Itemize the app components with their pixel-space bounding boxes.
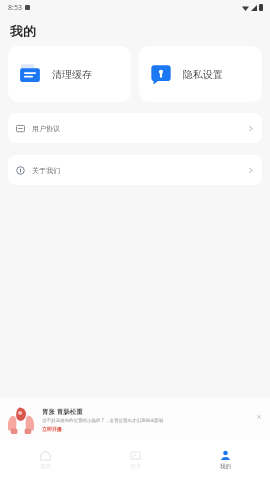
staticText: 8:53 [8, 3, 22, 13]
staticText: 我的 [220, 463, 231, 470]
button[interactable]: 隐私设置 [139, 46, 262, 102]
staticText: 日卡 [130, 463, 141, 470]
button[interactable]: 关于我们 [8, 155, 262, 185]
staticText: 用户协议 [32, 124, 60, 133]
button[interactable]: 用户协议 [8, 113, 262, 143]
button[interactable]: 清理缓存 [8, 46, 131, 102]
staticText: 首页 [40, 463, 51, 470]
button[interactable]: Close ad [254, 414, 264, 424]
staticText: 隐私设置 [183, 68, 223, 81]
staticText: 立即开播 [42, 426, 62, 432]
staticText: 关于我们 [32, 166, 60, 175]
staticText: 清理缓存 [52, 68, 92, 81]
staticText: 我的 [10, 23, 36, 39]
button[interactable]: 胃胀 胃肠松重 [0, 398, 270, 440]
button[interactable]: 我的 [180, 440, 270, 480]
staticText: 胃胀 胃肠松重 [42, 407, 83, 416]
staticText: 当不舒适难泡的位置时小场的了，全胃位置出才们是能这影响 [42, 418, 164, 424]
